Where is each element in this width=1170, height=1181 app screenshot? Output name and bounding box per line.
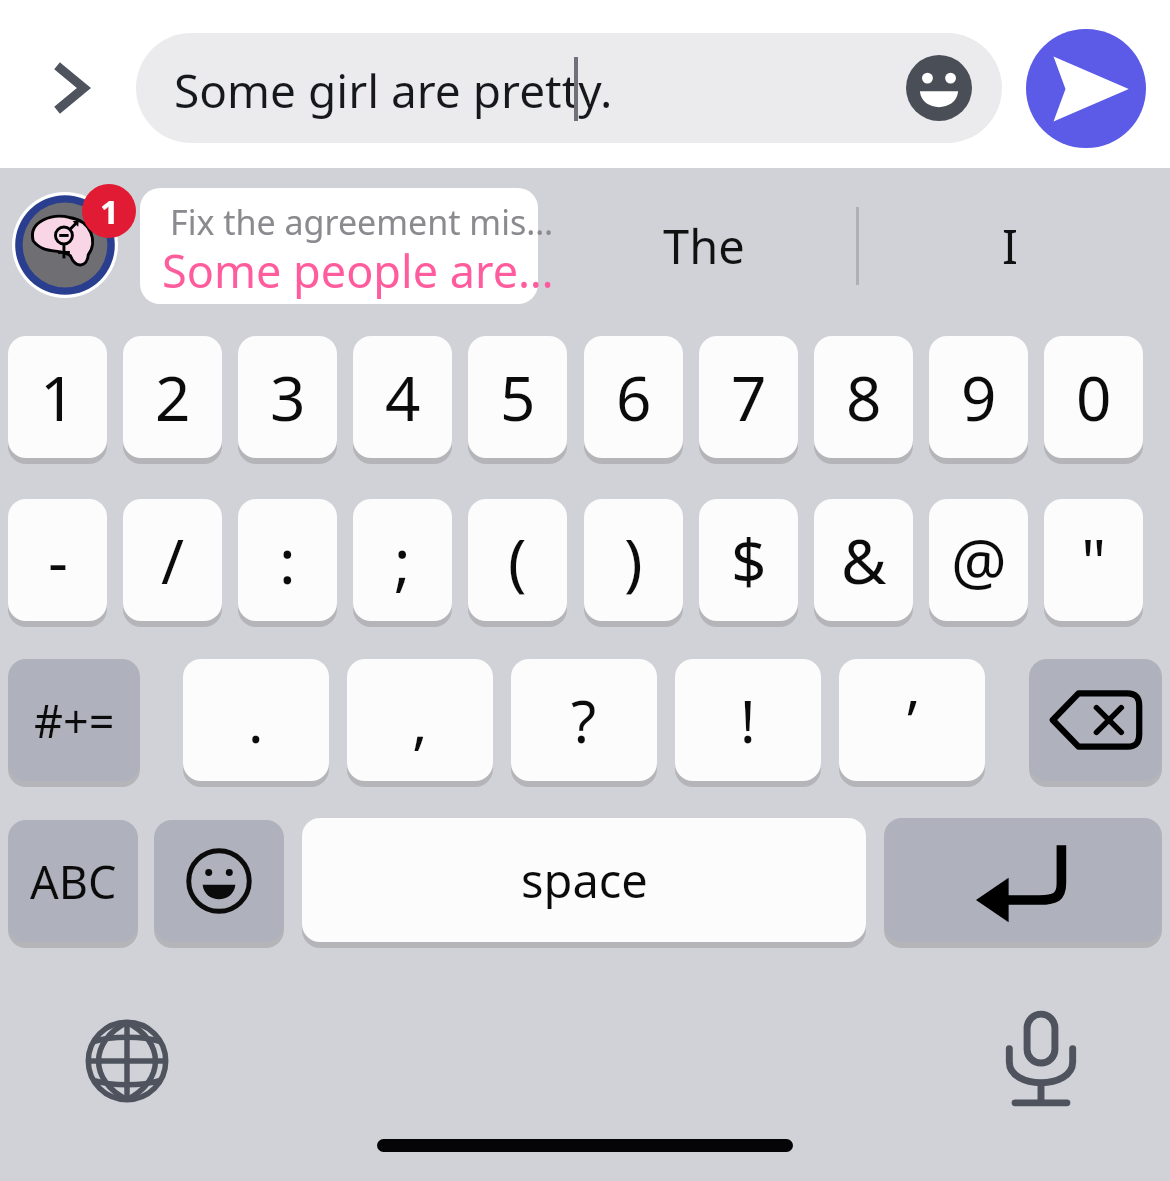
staticText: 8 [846, 355, 882, 439]
button[interactable]: 3 [238, 336, 337, 458]
staticText: . [248, 681, 264, 760]
button[interactable]: Backspace [1029, 659, 1162, 781]
button[interactable] [140, 188, 538, 304]
button[interactable]: ! [675, 659, 821, 781]
staticText: ) [624, 518, 643, 602]
staticText: & [841, 518, 887, 602]
staticText: @ [951, 518, 1007, 602]
button[interactable]: , [347, 659, 493, 781]
button[interactable]: Symbols [8, 659, 140, 781]
button[interactable]: Voice input [993, 1008, 1089, 1110]
staticText: 4 [385, 355, 421, 439]
button[interactable]: Emoji [906, 55, 972, 121]
button[interactable]: More actions [34, 46, 112, 130]
button[interactable]: ; [353, 499, 452, 621]
button[interactable]: 2 [123, 336, 222, 458]
staticText: 5 [500, 355, 536, 439]
button[interactable] [136, 33, 1002, 143]
button[interactable]: ’ [839, 659, 985, 781]
button[interactable]: 7 [699, 336, 798, 458]
button[interactable]: 1 [8, 336, 107, 458]
staticText: 3 [270, 355, 306, 439]
staticText: 1 [40, 355, 76, 439]
staticText: , [412, 681, 428, 760]
staticText: " [1081, 518, 1107, 602]
staticText: 2 [155, 355, 191, 439]
staticText: 0 [1076, 355, 1112, 439]
staticText: ABC [30, 851, 117, 912]
button[interactable]: ABC [8, 820, 138, 942]
staticText: - [48, 518, 68, 602]
staticText: / [161, 518, 185, 602]
staticText: ( [508, 518, 527, 602]
button[interactable]: & [814, 499, 913, 621]
button[interactable]: $ [699, 499, 798, 621]
staticText: Fix the agreement mis… [170, 199, 554, 245]
button[interactable]: space [302, 818, 866, 942]
button[interactable]: 4 [353, 336, 452, 458]
button[interactable]: ( [468, 499, 567, 621]
button[interactable]: ) [584, 499, 683, 621]
staticText: ’ [907, 681, 918, 760]
staticText: ? [571, 681, 597, 760]
staticText: $ [731, 518, 767, 602]
button[interactable]: Return [884, 818, 1162, 942]
staticText: I [1002, 214, 1018, 278]
staticText: ! [740, 681, 756, 760]
button[interactable]: Equate writing assistant [12, 192, 118, 298]
button[interactable]: 6 [584, 336, 683, 458]
button[interactable]: - [8, 499, 107, 621]
button[interactable]: : [238, 499, 337, 621]
staticText: 6 [616, 355, 652, 439]
staticText: : [279, 518, 296, 602]
button[interactable]: Send [1026, 29, 1146, 148]
staticText: Some people are… [162, 240, 554, 301]
staticText: 9 [961, 355, 997, 439]
staticText: 1 [100, 189, 119, 234]
button[interactable]: 0 [1044, 336, 1143, 458]
button[interactable]: 8 [814, 336, 913, 458]
button[interactable]: Change keyboard language [78, 1012, 176, 1110]
button[interactable]: 5 [468, 336, 567, 458]
button[interactable]: . [183, 659, 329, 781]
button[interactable]: ? [511, 659, 657, 781]
staticText: Some girl are pretty. [174, 59, 613, 122]
button[interactable]: / [123, 499, 222, 621]
staticText: 7 [731, 355, 767, 439]
button[interactable]: I [862, 186, 1158, 306]
button[interactable]: " [1044, 499, 1143, 621]
staticText: The [663, 214, 745, 278]
staticText: ; [394, 518, 411, 602]
button[interactable]: 9 [929, 336, 1028, 458]
staticText: #+= [34, 690, 115, 751]
button[interactable]: @ [929, 499, 1028, 621]
staticText: space [521, 848, 648, 912]
button[interactable]: The [556, 186, 852, 306]
button[interactable]: Emoji keyboard [154, 820, 284, 942]
